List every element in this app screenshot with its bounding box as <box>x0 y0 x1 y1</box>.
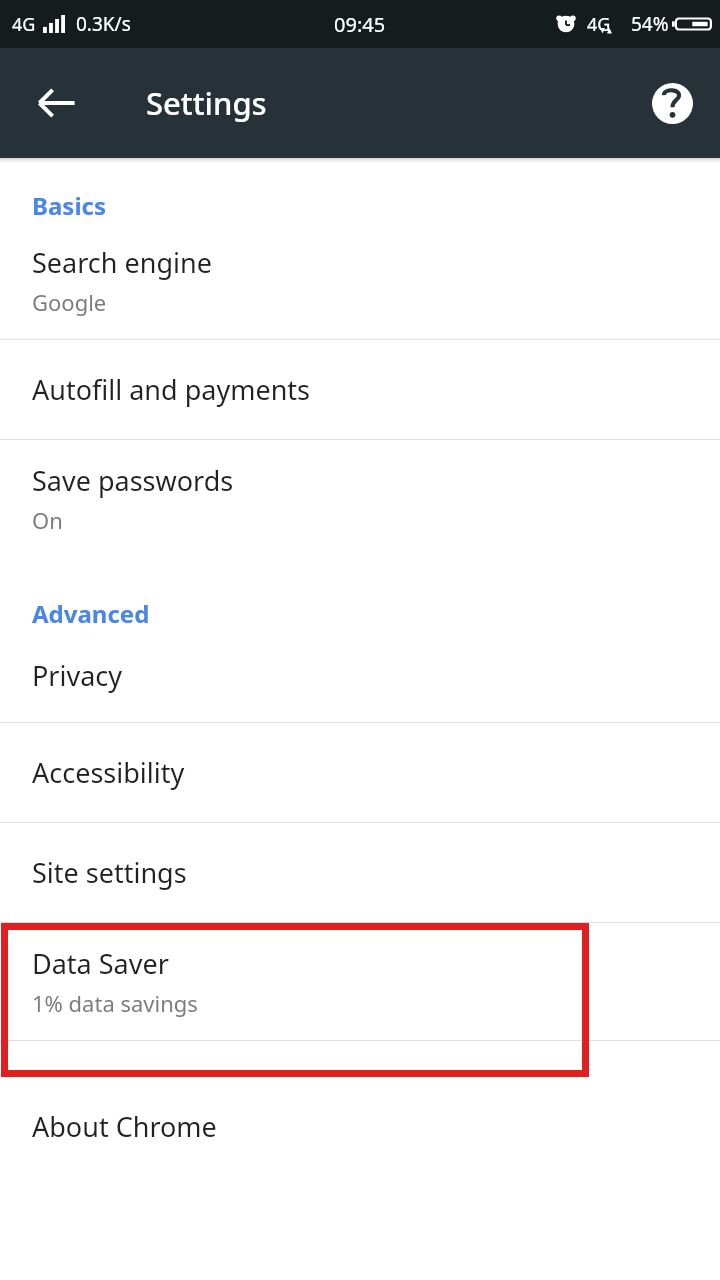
staticText: On <box>32 505 63 535</box>
button[interactable]: Accessibility <box>0 723 720 822</box>
staticText: 1% data savings <box>32 988 198 1018</box>
button[interactable]: Autofill and payments <box>0 340 720 439</box>
staticText: Site settings <box>32 854 187 891</box>
staticText: 4G <box>12 12 36 37</box>
button[interactable]: About Chrome <box>0 1077 720 1176</box>
staticText: 0.3K/s <box>76 11 131 37</box>
button[interactable]: Privacy <box>0 630 720 722</box>
staticText: Basics <box>32 189 106 222</box>
staticText: Advanced <box>32 597 150 630</box>
staticText: Settings <box>146 82 267 124</box>
button[interactable]: Help <box>632 63 712 143</box>
staticText: 4G <box>587 12 611 37</box>
button[interactable]: Back <box>15 61 99 145</box>
staticText: Google <box>32 287 107 317</box>
staticText: Privacy <box>32 657 123 694</box>
staticText: 09:45 <box>334 11 386 38</box>
staticText: Search engine <box>32 244 212 281</box>
button[interactable]: Save passwords <box>0 440 720 557</box>
staticText: Save passwords <box>32 462 234 499</box>
staticText: Autofill and payments <box>32 371 311 408</box>
staticText: About Chrome <box>32 1108 217 1145</box>
button[interactable]: Data Saver <box>0 923 720 1040</box>
staticText: Data Saver <box>32 945 169 982</box>
staticText: 54% <box>631 11 669 37</box>
staticText: Accessibility <box>32 754 185 791</box>
button[interactable]: Search engine <box>0 222 720 339</box>
button[interactable]: Site settings <box>0 823 720 922</box>
